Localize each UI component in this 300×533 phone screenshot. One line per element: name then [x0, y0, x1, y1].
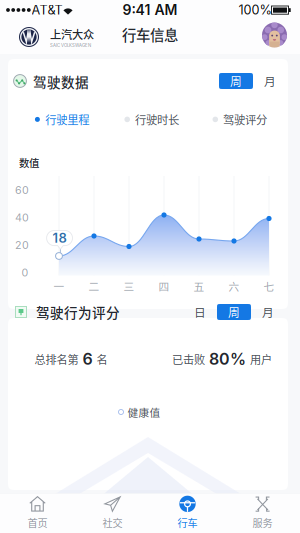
staticText: 首页 [27, 515, 47, 530]
staticText: 80% [205, 349, 250, 369]
button[interactable]: 日 [183, 304, 217, 320]
button[interactable]: 服务 [225, 490, 300, 533]
staticText: 三 [123, 278, 134, 294]
button[interactable]: 行车 [150, 490, 225, 533]
staticText: 9:41 AM [122, 1, 177, 18]
button[interactable]: 上汽大众 SAIC Volkswagen [0, 19, 94, 55]
staticText: 0 [21, 266, 28, 279]
button[interactable]: 行驶里程 [35, 108, 93, 131]
button[interactable]: 周 [217, 304, 251, 320]
staticText: AT&T [31, 2, 62, 18]
staticText: 四 [158, 278, 169, 294]
staticText: 总排名第 [34, 351, 78, 367]
staticText: 18 [52, 230, 66, 246]
button[interactable]: 个人中心 [262, 23, 287, 48]
staticText: 服务 [252, 515, 272, 530]
staticText: 100% [238, 2, 271, 18]
staticText: 驾驶数据 [33, 72, 89, 91]
staticText: 健康值 [127, 404, 160, 420]
staticText: 驾驶评分 [223, 111, 267, 128]
staticText: 周 [228, 303, 240, 320]
staticText: 行驶时长 [135, 111, 179, 128]
staticText: 40 [15, 211, 29, 224]
staticText: 用户 [250, 351, 272, 367]
staticText: 二 [88, 278, 99, 294]
button[interactable]: 首页 [0, 490, 75, 533]
staticText: 月 [262, 303, 274, 320]
staticText: 月 [264, 72, 276, 89]
staticText: 数值 [19, 155, 39, 170]
staticText: 周 [230, 72, 242, 89]
staticText: 七 [263, 278, 274, 294]
staticText: 驾驶行为评分 [36, 302, 120, 322]
staticText: 已击败 [172, 351, 205, 367]
staticText: 六 [228, 278, 239, 294]
button[interactable]: 周 [219, 73, 253, 89]
staticText: 行车信息 [122, 24, 178, 45]
staticText: 社交 [102, 515, 122, 530]
button[interactable]: 行驶时长 [124, 108, 182, 131]
staticText: 五 [193, 278, 204, 294]
staticText: 行驶里程 [45, 111, 89, 128]
button[interactable]: 月 [251, 304, 285, 320]
staticText: 行车 [177, 515, 197, 530]
button[interactable]: 社交 [75, 490, 150, 533]
button[interactable]: 驾驶评分 [212, 108, 270, 131]
staticText: SAIC VOLKSWAGEN [50, 43, 91, 48]
staticText: 20 [15, 238, 29, 251]
staticText: 6 [78, 349, 96, 369]
staticText: 日 [194, 303, 206, 320]
staticText: 60 [15, 183, 29, 196]
staticText: 上汽大众 [50, 26, 94, 42]
staticText: 名 [96, 351, 107, 367]
button[interactable]: 月 [253, 73, 287, 89]
staticText: 一 [53, 278, 64, 294]
